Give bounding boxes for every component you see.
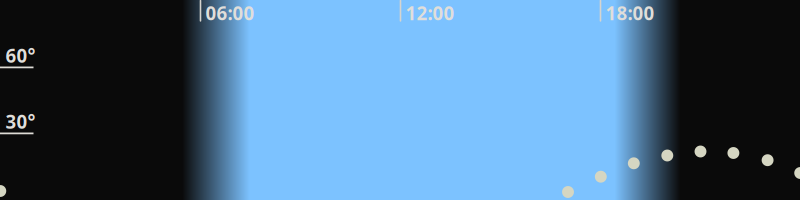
staticText: 18:00 <box>605 1 654 25</box>
staticText: 60° <box>5 43 35 68</box>
staticText: 06:00 <box>205 1 254 25</box>
staticText: 30° <box>5 109 35 134</box>
staticText: 12:00 <box>405 1 454 25</box>
